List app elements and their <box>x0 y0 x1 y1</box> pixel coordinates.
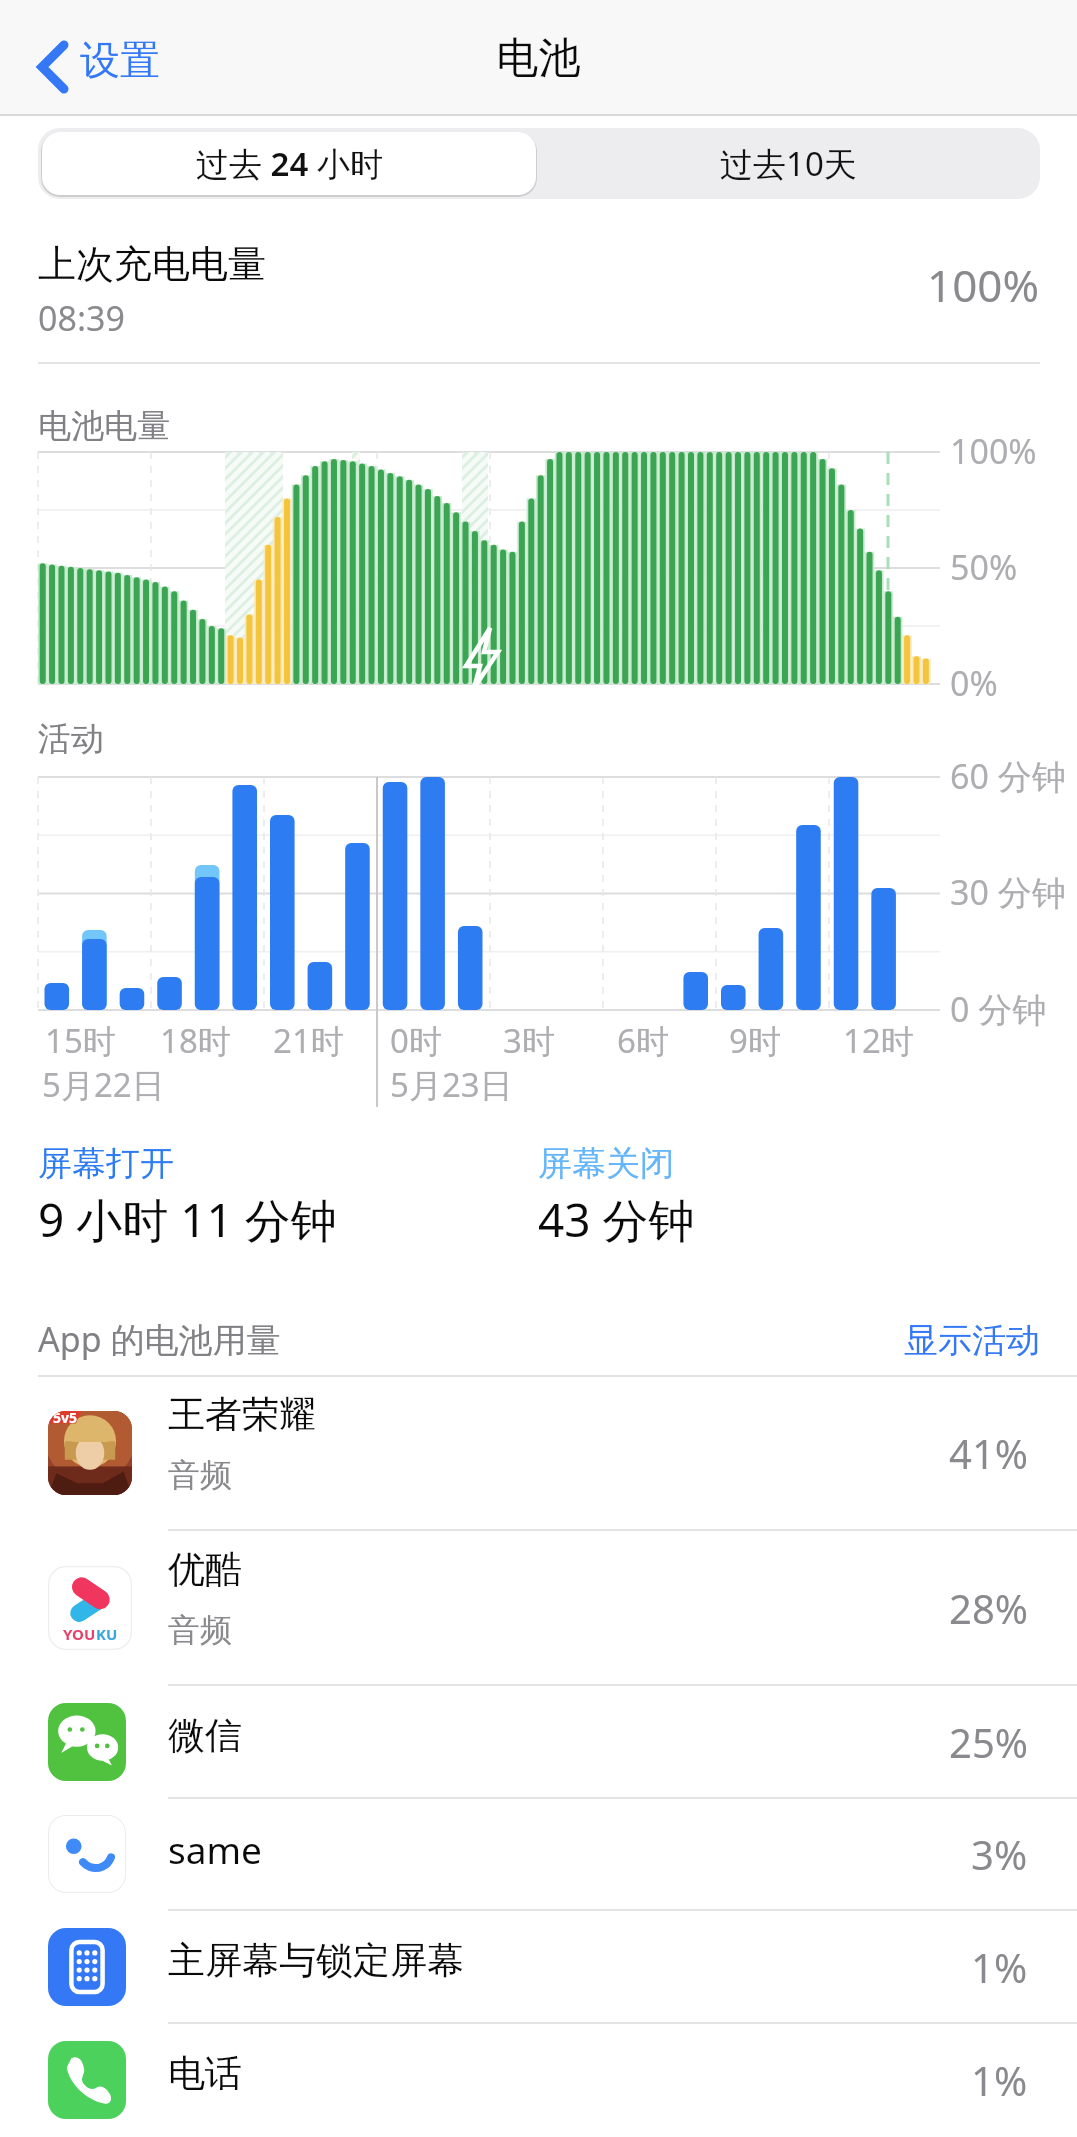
staticText: 优酷 <box>168 1546 242 1593</box>
staticText: 41% <box>949 1426 1028 1480</box>
button[interactable]: same <box>0 1798 1077 1910</box>
staticText: 3% <box>971 1827 1028 1881</box>
staticText: 主屏幕与锁定屏幕 <box>168 1937 464 1984</box>
button[interactable]: 显示活动 <box>640 1316 1040 1364</box>
staticText: 王者荣耀 <box>168 1391 316 1438</box>
button[interactable]: 过去10天 <box>540 132 1036 195</box>
staticText: KU <box>96 1624 118 1644</box>
staticText: 上次充电电量 <box>38 240 266 288</box>
staticText: 30 分钟 <box>950 869 1066 915</box>
button[interactable]: 主屏幕与锁定屏幕 <box>0 1910 1077 2023</box>
staticText: App 的电池用量 <box>38 1316 281 1362</box>
staticText: 屏幕打开 <box>38 1142 174 1185</box>
staticText: 25% <box>949 1715 1028 1769</box>
staticText: 21时 <box>273 1018 344 1063</box>
button[interactable]: 设置 <box>30 35 190 99</box>
staticText: same <box>168 1824 262 1874</box>
staticText: 电话 <box>168 2050 242 2097</box>
staticText: 屏幕关闭 <box>538 1142 674 1185</box>
button[interactable]: 微信 <box>0 1685 1077 1798</box>
button[interactable]: 5v5 <box>0 1375 1077 1530</box>
staticText: 08:39 <box>38 295 125 341</box>
staticText: 0时 <box>390 1018 442 1063</box>
staticText: YOU <box>63 1624 96 1644</box>
staticText: 过去 24 小时 <box>196 141 383 186</box>
button[interactable]: 电话 <box>0 2023 1077 2137</box>
staticText: 6时 <box>617 1018 669 1063</box>
staticText: 音频 <box>168 1610 232 1650</box>
staticText: 微信 <box>168 1712 242 1759</box>
staticText: 9 小时 11 分钟 <box>38 1188 337 1251</box>
staticText: 100% <box>927 255 1040 315</box>
staticText: 显示活动 <box>904 1319 1040 1362</box>
staticText: 100% <box>950 428 1037 474</box>
staticText: 音频 <box>168 1455 232 1495</box>
staticText: 电池电量 <box>38 405 170 447</box>
staticText: 28% <box>949 1581 1028 1635</box>
staticText: 5月22日 <box>42 1062 165 1107</box>
staticText: 50% <box>950 544 1018 590</box>
staticText: 过去10天 <box>720 141 857 186</box>
staticText: 设置 <box>80 35 160 85</box>
staticText: 5月23日 <box>390 1062 513 1107</box>
staticText: 18时 <box>160 1018 231 1063</box>
staticText: 电池 <box>0 32 1077 85</box>
staticText: 12时 <box>843 1018 914 1063</box>
staticText: 1% <box>971 1940 1028 1994</box>
staticText: 1% <box>971 2053 1028 2107</box>
staticText: 60 分钟 <box>950 753 1066 799</box>
staticText: 3时 <box>503 1018 555 1063</box>
staticText: 0% <box>950 660 998 706</box>
staticText: 活动 <box>38 718 104 760</box>
staticText: 0 分钟 <box>950 986 1047 1032</box>
staticText: 43 分钟 <box>538 1188 695 1251</box>
staticText: 9时 <box>729 1018 781 1063</box>
staticText: 5v5 <box>53 1411 78 1427</box>
staticText: 15时 <box>45 1018 116 1063</box>
button[interactable]: 过去 24 小时 <box>42 132 536 195</box>
button[interactable]: YOU <box>0 1530 1077 1685</box>
